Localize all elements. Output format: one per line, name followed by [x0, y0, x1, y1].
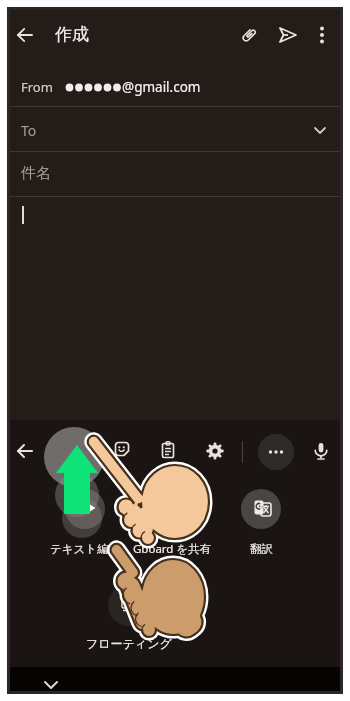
button[interactable]: [10, 667, 340, 691]
button[interactable]: From: [10, 66, 340, 106]
button[interactable]: [44, 427, 104, 487]
button[interactable]: [41, 675, 61, 695]
staticText: テキスト編集: [50, 542, 121, 556]
button[interactable]: [13, 439, 37, 463]
staticText: 翻訳: [250, 542, 273, 556]
button[interactable]: [237, 23, 261, 47]
staticText: @gmail.com: [122, 78, 201, 96]
button[interactable]: 件名: [10, 152, 340, 196]
button[interactable]: [110, 437, 134, 461]
button[interactable]: [13, 23, 37, 47]
staticText: フローティング: [86, 636, 172, 651]
staticText: Gboard を共有: [133, 541, 212, 557]
button[interactable]: [309, 439, 333, 463]
button[interactable]: [258, 434, 294, 470]
button[interactable]: [241, 489, 281, 529]
staticText: To: [21, 121, 37, 140]
button[interactable]: [310, 23, 334, 47]
button[interactable]: To: [10, 107, 340, 151]
button[interactable]: [156, 438, 180, 462]
button[interactable]: [108, 584, 150, 626]
staticText: 作成: [55, 24, 89, 45]
staticText: From: [21, 78, 53, 96]
button[interactable]: [276, 23, 300, 47]
button[interactable]: [65, 489, 105, 529]
staticText: 件名: [21, 164, 51, 183]
button[interactable]: [203, 439, 227, 463]
